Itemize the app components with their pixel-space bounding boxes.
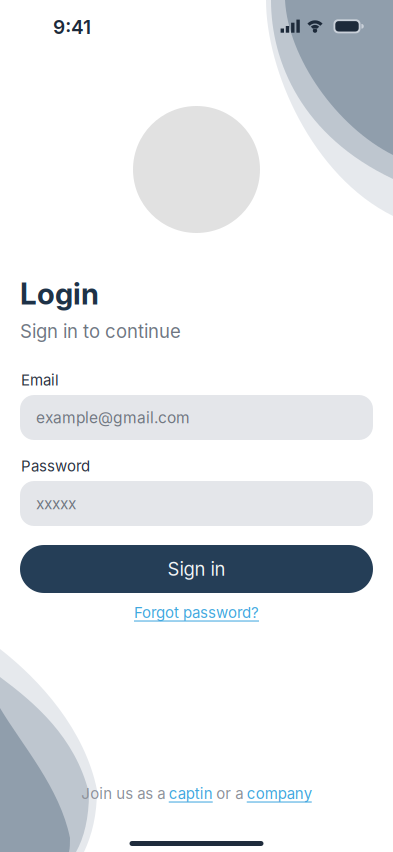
staticText: Login [20,276,99,312]
staticText: Sign in [167,558,225,580]
staticText: or a [216,784,243,802]
button[interactable]: Sign in [20,545,373,593]
staticText: captin [169,784,213,802]
button[interactable]: company [247,784,312,802]
staticText: 9:41 [53,15,91,38]
button[interactable]: Forgot password? [134,603,259,621]
button[interactable]: captin [169,784,213,802]
staticText: Password [21,457,90,475]
staticText: Forgot password? [134,603,259,621]
staticText: xxxxx [36,494,76,513]
staticText: company [247,784,312,802]
staticText: example@gmail.com [36,408,190,427]
staticText: Email [21,371,59,389]
button[interactable]: Password [20,481,373,526]
staticText: Join us as a [81,784,165,802]
button[interactable]: Email [20,395,373,440]
staticText: Sign in to continue [20,320,181,342]
